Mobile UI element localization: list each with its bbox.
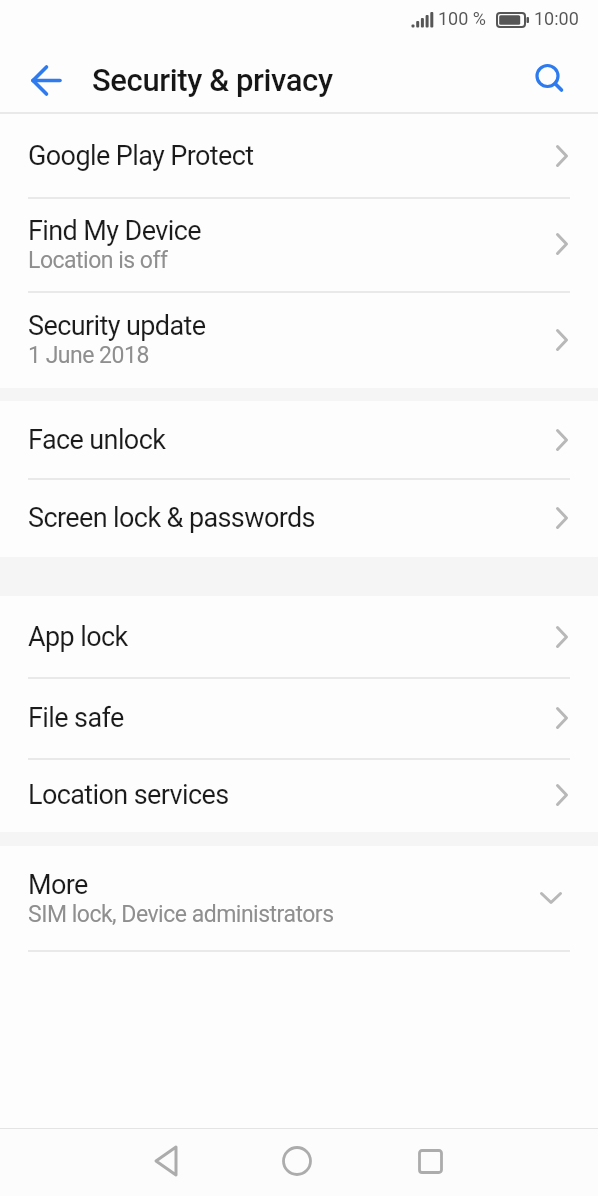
staticText: Screen lock & passwords: [28, 502, 315, 534]
button[interactable]: Face unlock: [0, 401, 598, 478]
staticText: File safe: [28, 702, 124, 734]
staticText: 1 June 2018: [28, 342, 149, 369]
button[interactable]: Find My Device: [0, 197, 598, 291]
staticText: SIM lock, Device administrators: [28, 901, 334, 928]
staticText: Google Play Protect: [28, 140, 254, 172]
button[interactable]: Location services: [0, 758, 598, 832]
staticText: 10:00: [534, 8, 579, 29]
staticText: Find My Device: [28, 215, 201, 247]
button[interactable]: Screen lock & passwords: [0, 478, 598, 557]
button[interactable]: App lock: [0, 596, 598, 677]
staticText: Location services: [28, 779, 229, 811]
staticText: App lock: [28, 621, 128, 653]
staticText: Face unlock: [28, 424, 166, 456]
staticText: Security update: [28, 310, 206, 342]
button[interactable]: Google Play Protect: [0, 114, 598, 197]
button[interactable]: More: [0, 846, 598, 950]
button[interactable]: [406, 1137, 454, 1185]
staticText: Security & privacy: [92, 62, 333, 98]
button[interactable]: [142, 1137, 190, 1185]
button[interactable]: [22, 56, 70, 104]
staticText: 100 %: [438, 8, 486, 29]
button[interactable]: [273, 1137, 321, 1185]
button[interactable]: Security update: [0, 291, 598, 388]
staticText: Location is off: [28, 247, 168, 274]
button[interactable]: [525, 54, 573, 102]
staticText: More: [28, 869, 88, 901]
button[interactable]: File safe: [0, 677, 598, 758]
